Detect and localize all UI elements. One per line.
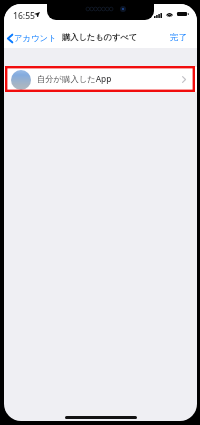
button[interactable]: アカウント: [4, 28, 59, 47]
staticText: 16:55: [13, 10, 36, 22]
staticText: 購入したものすべて: [62, 32, 138, 42]
button[interactable]: 完了: [166, 28, 191, 46]
staticText: 完了: [170, 32, 187, 43]
button[interactable]: 自分が購入したApp: [4, 67, 197, 92]
staticText: 自分が購入したApp: [37, 73, 112, 84]
staticText: アカウント: [14, 33, 57, 43]
